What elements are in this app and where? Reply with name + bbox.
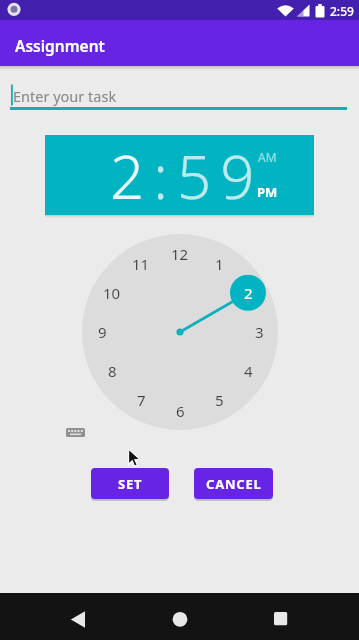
staticText: Enter your task — [13, 86, 117, 106]
button[interactable]: SET — [91, 468, 169, 499]
staticText: Assignment — [15, 35, 105, 56]
button[interactable]: Assignment — [0, 20, 359, 66]
button[interactable]: 9 — [87, 321, 117, 343]
staticText: 6 — [176, 401, 185, 421]
button[interactable]: 8 — [97, 360, 127, 382]
button[interactable]: Enter your task — [10, 80, 347, 110]
staticText: 8 — [108, 361, 117, 381]
staticText: 3 — [255, 322, 264, 342]
button[interactable] — [40, 593, 120, 640]
button[interactable]: 7 — [126, 389, 156, 411]
button[interactable]: 11 — [126, 253, 156, 275]
staticText: 9 — [98, 322, 107, 342]
button[interactable]: 6 — [165, 400, 195, 422]
button[interactable]: 12 — [165, 243, 195, 265]
staticText: SET — [118, 475, 143, 493]
staticText: 4 — [244, 361, 253, 381]
staticText: 2:59 — [110, 135, 264, 215]
button[interactable]: 5 — [204, 389, 234, 411]
button[interactable]: 10 — [97, 282, 127, 304]
button[interactable] — [240, 593, 320, 640]
staticText: 11 — [132, 254, 150, 274]
button[interactable]: 3 — [244, 321, 274, 343]
staticText: 1 — [215, 254, 224, 274]
button[interactable]: PM — [252, 183, 282, 201]
staticText: CANCEL — [206, 475, 262, 493]
button[interactable] — [140, 593, 220, 640]
button[interactable]: AM — [252, 148, 282, 166]
staticText: PM — [257, 183, 278, 201]
staticText: AM — [258, 149, 277, 165]
staticText: 12 — [171, 244, 189, 264]
staticText: 2 — [244, 283, 253, 303]
staticText: 7 — [137, 390, 146, 410]
staticText: 5 — [215, 390, 224, 410]
button[interactable]: 1 — [204, 253, 234, 275]
staticText: 2:59 — [330, 3, 354, 19]
staticText: 10 — [103, 283, 121, 303]
button[interactable]: 2 — [233, 282, 263, 304]
button[interactable]: 4 — [233, 360, 263, 382]
button[interactable]: 2:59 — [45, 135, 314, 215]
button[interactable]: CANCEL — [194, 468, 273, 499]
